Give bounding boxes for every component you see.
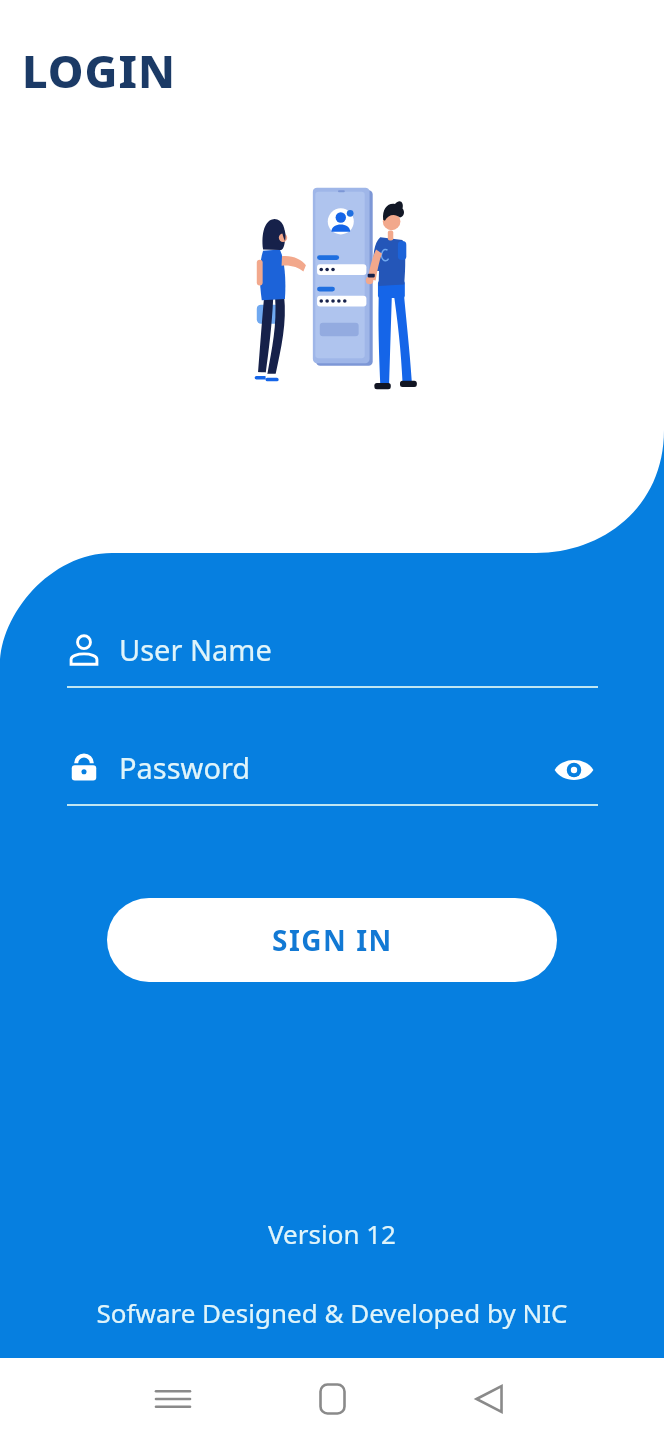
button[interactable]: Password <box>67 748 598 806</box>
staticText: SIGN IN <box>272 921 393 959</box>
other: Password <box>67 751 101 785</box>
button[interactable]: Back <box>460 1369 520 1429</box>
button[interactable]: User <box>67 630 598 688</box>
staticText: Password <box>119 748 251 787</box>
staticText: LOGIN <box>22 40 176 101</box>
button[interactable]: Recents <box>143 1369 203 1429</box>
button[interactable]: Show password <box>550 746 598 794</box>
staticText: Sofware Designed & Developed by NIC <box>0 1295 664 1330</box>
staticText: User Name <box>119 630 272 669</box>
button[interactable]: Home <box>302 1369 362 1429</box>
other: User <box>67 633 101 667</box>
staticText: Version 12 <box>0 1216 664 1251</box>
button[interactable]: SIGN IN <box>107 898 557 982</box>
